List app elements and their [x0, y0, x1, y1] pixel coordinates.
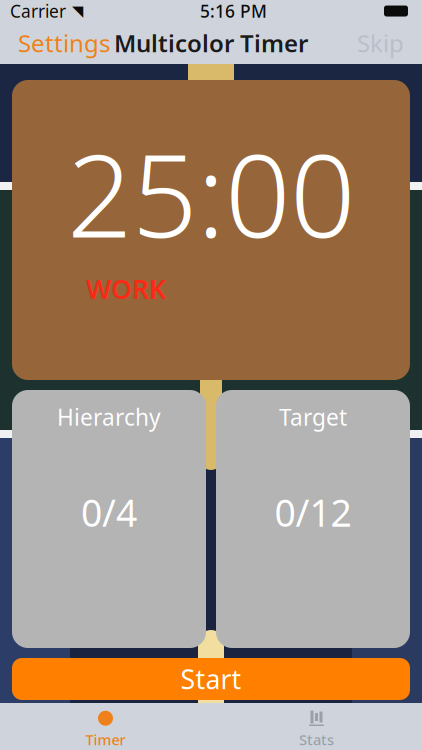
staticText: Skip [357, 27, 404, 59]
staticText: 0/4 [81, 487, 137, 537]
staticText: Hierarchy [57, 402, 161, 432]
button[interactable]: Stats [211, 704, 422, 749]
staticText: Start [180, 661, 241, 697]
staticText: Settings [18, 27, 110, 59]
button[interactable]: Hierarchy [12, 390, 206, 648]
button[interactable]: Start [12, 658, 410, 700]
button[interactable]: Target [216, 390, 410, 648]
staticText: Target [279, 402, 347, 432]
staticText: 25:00 [67, 117, 355, 269]
staticText: Multicolor Timer [114, 27, 308, 59]
button[interactable]: Settings [8, 19, 120, 67]
staticText: ◥ [72, 3, 83, 19]
staticText: Timer [85, 730, 125, 749]
staticText: Stats [299, 730, 334, 749]
button[interactable]: Timer [0, 704, 211, 749]
staticText: Carrier [10, 0, 66, 22]
staticText: WORK [86, 271, 166, 306]
staticText: 5:16 PM [200, 0, 267, 22]
button[interactable]: Skip [347, 19, 414, 67]
staticText: 0/12 [274, 487, 351, 537]
